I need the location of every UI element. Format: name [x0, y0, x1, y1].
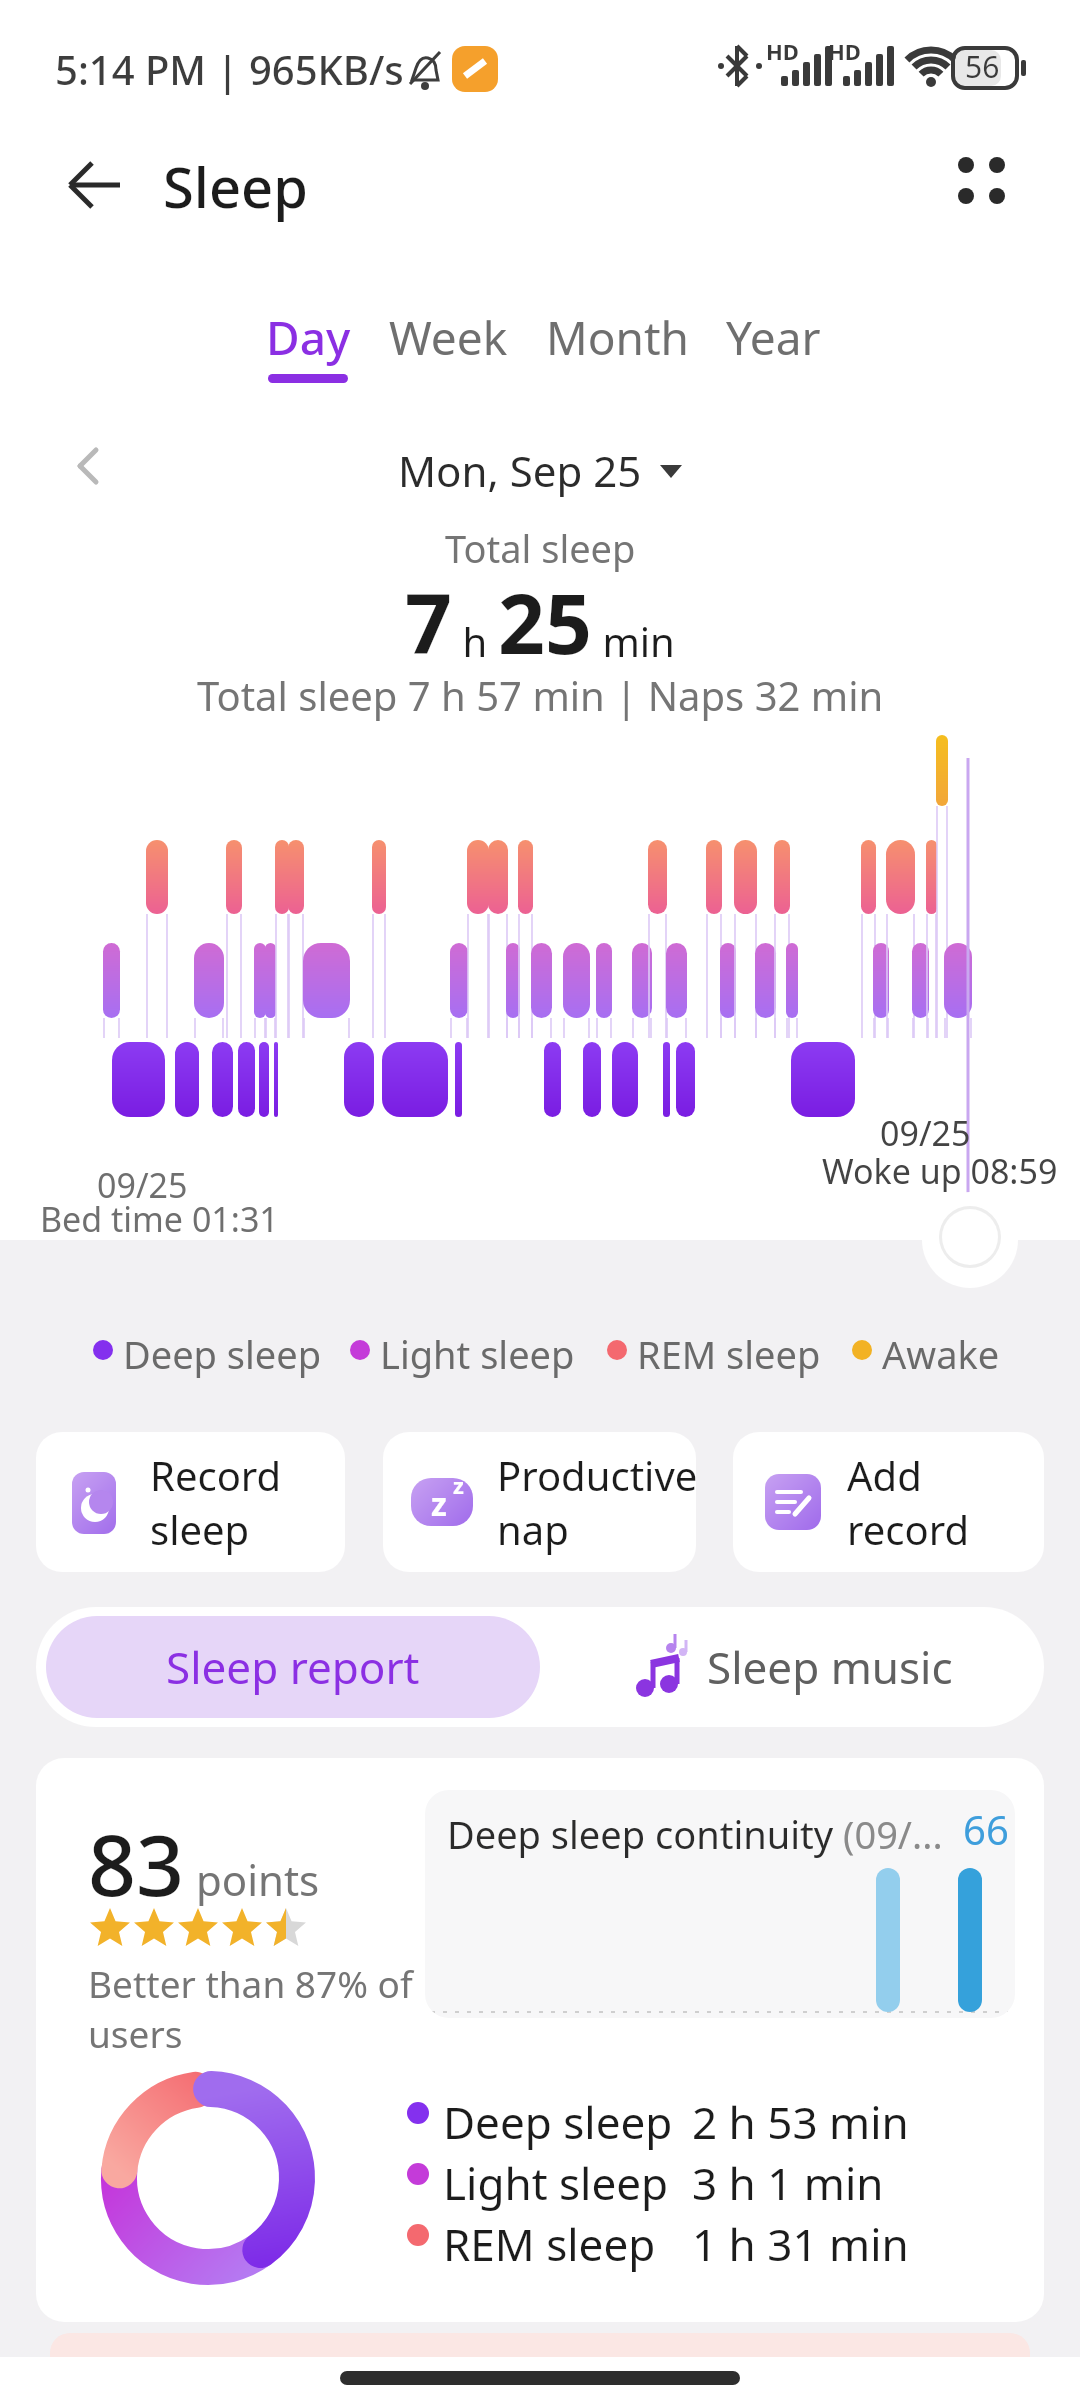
button[interactable]: [60, 150, 130, 220]
staticText: Sleep report: [166, 1637, 420, 1697]
button[interactable]: Day: [0, 0, 85, 63]
staticText: Better than 87% of: [88, 1958, 413, 2008]
button[interactable]: 83: [36, 1758, 1044, 2322]
staticText: users: [88, 2008, 183, 2058]
staticText: Productive: [497, 1448, 696, 1502]
staticText: nap: [497, 1502, 569, 1556]
staticText: 25: [498, 566, 592, 678]
button[interactable]: [940, 140, 1020, 220]
staticText: 83: [88, 1806, 185, 1920]
staticText: z: [431, 1482, 447, 1526]
staticText: Awake: [882, 1328, 1000, 1380]
staticText: Sleep: [163, 148, 308, 224]
button[interactable]: Mon, Sep 25: [398, 442, 682, 499]
staticText: 7: [405, 566, 452, 678]
staticText: (09/...: [843, 1808, 943, 1860]
staticText: min: [592, 614, 675, 668]
staticText: Bed time 01:31: [40, 1196, 279, 1242]
staticText: Light sleep: [443, 2153, 669, 2213]
staticText: 66: [963, 1802, 1009, 1856]
staticText: HD: [828, 36, 861, 66]
button[interactable]: Sleep report: [46, 1616, 540, 1718]
staticText: Add: [847, 1448, 922, 1502]
staticText: h: [452, 614, 498, 668]
button[interactable]: z: [383, 1432, 696, 1572]
button[interactable]: [72, 448, 108, 484]
staticText: 5:14 PM | 965KB/s: [55, 42, 404, 96]
button[interactable]: Year: [0, 0, 95, 63]
button[interactable]: Record: [36, 1432, 345, 1572]
staticText: z: [453, 1470, 464, 1500]
staticText: 56: [965, 46, 1000, 87]
button[interactable]: Week: [0, 0, 119, 63]
staticText: 09/25: [97, 1162, 188, 1208]
staticText: Deep sleep: [443, 2092, 673, 2152]
staticText: Deep sleep: [123, 1328, 322, 1380]
button[interactable]: Sleep music: [540, 1607, 1044, 1727]
button[interactable]: Add: [733, 1432, 1044, 1572]
staticText: 3 h 1 min: [692, 2153, 884, 2213]
staticText: Deep sleep continuity: [447, 1808, 843, 1860]
staticText: Total sleep 7 h 57 min | Naps 32 min: [197, 668, 884, 722]
staticText: Record: [150, 1448, 282, 1502]
staticText: HD: [766, 36, 799, 66]
button[interactable]: Month: [0, 0, 144, 63]
staticText: points: [185, 1851, 320, 1908]
staticText: REM sleep: [443, 2214, 656, 2274]
staticText: Woke up 08:59: [822, 1148, 1058, 1194]
staticText: Mon, Sep 25: [398, 442, 642, 499]
staticText: Total sleep: [445, 522, 636, 574]
staticText: REM sleep: [637, 1328, 821, 1380]
staticText: 2 h 53 min: [692, 2092, 909, 2152]
staticText: 09/25: [880, 1110, 971, 1156]
staticText: Sleep music: [707, 1637, 953, 1697]
staticText: 1 h 31 min: [692, 2214, 909, 2274]
staticText: sleep: [150, 1502, 250, 1556]
staticText: record: [847, 1502, 969, 1556]
staticText: Light sleep: [380, 1328, 575, 1380]
